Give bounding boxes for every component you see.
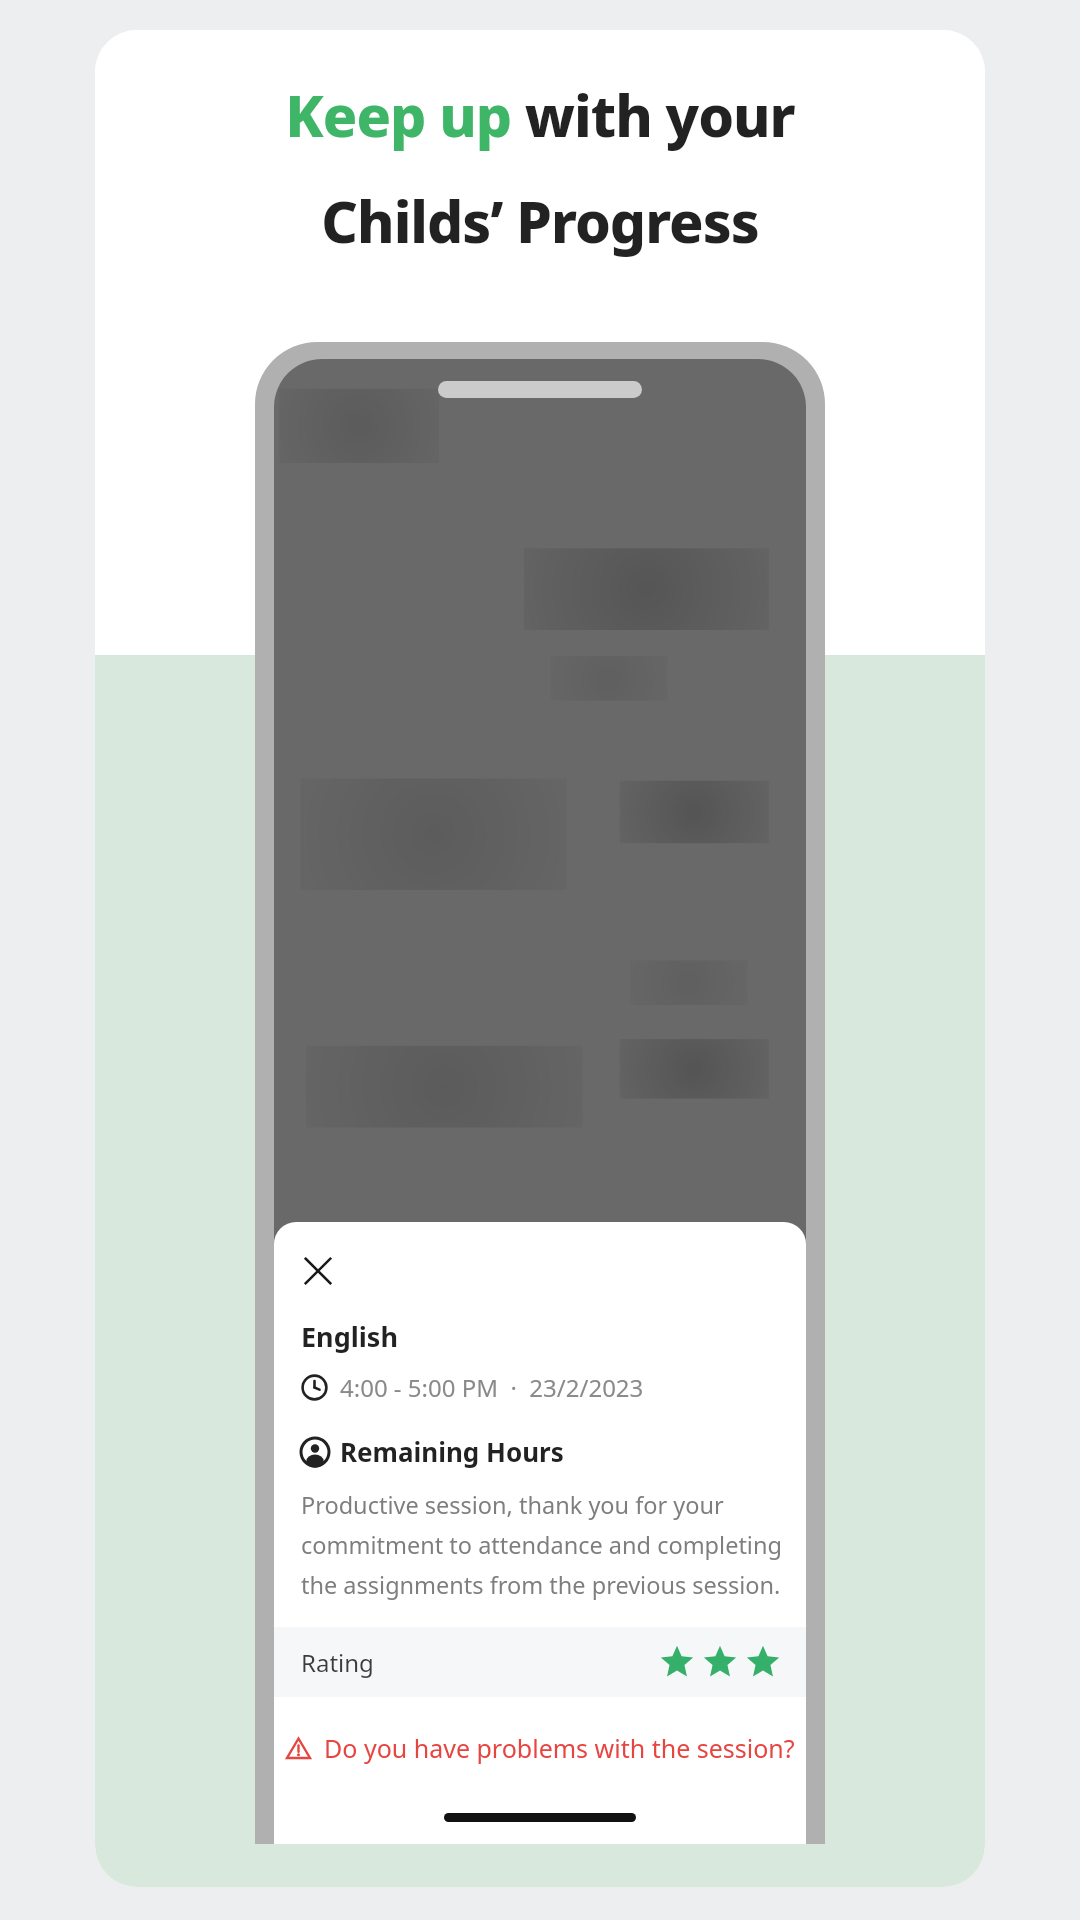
staticText: English bbox=[301, 1318, 398, 1355]
staticText: Childs’ Progress bbox=[321, 182, 759, 260]
staticText: Do you have problems with the session? bbox=[324, 1731, 795, 1765]
staticText: Productive session, thank you for your c… bbox=[301, 1489, 782, 1601]
button[interactable]: Rating bbox=[274, 1627, 806, 1697]
button[interactable]: Close bbox=[291, 1244, 345, 1298]
staticText: Keep up with your bbox=[285, 76, 795, 154]
staticText: Rating bbox=[301, 1646, 374, 1679]
staticText: Remaining Hours bbox=[340, 1434, 564, 1469]
staticText: 4:00 - 5:00 PM · 23/2/2023 bbox=[340, 1371, 644, 1404]
button[interactable]: Do you have problems with the session? bbox=[274, 1697, 806, 1799]
